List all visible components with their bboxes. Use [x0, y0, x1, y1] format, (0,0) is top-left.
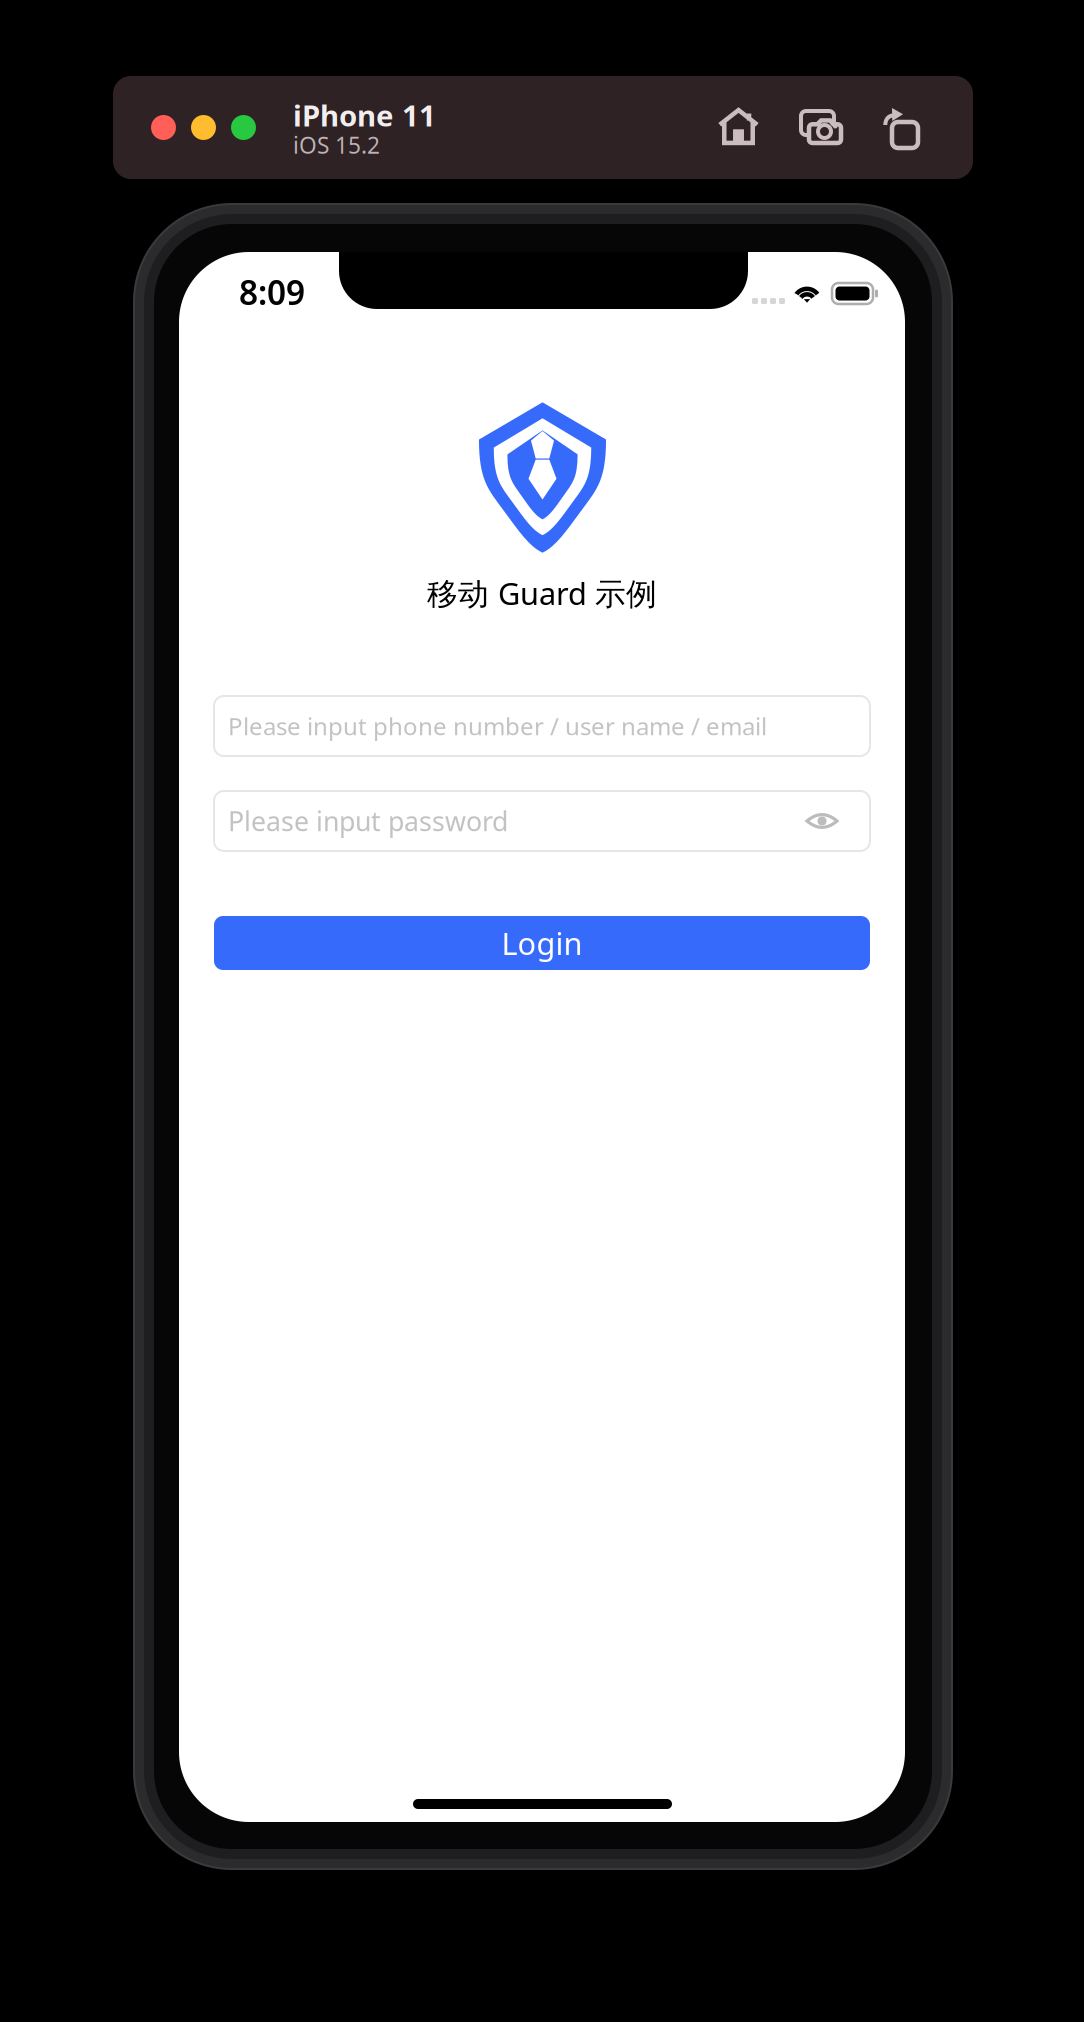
staticText: 移动 Guard 示例 — [427, 573, 657, 613]
button[interactable]: Rotate — [875, 100, 930, 153]
button[interactable]: Show password — [792, 791, 852, 851]
button[interactable]: Home — [711, 100, 766, 153]
staticText: Please input phone number / user name / … — [228, 710, 767, 742]
staticText: 8:09 — [239, 270, 305, 314]
staticText: Please input password — [228, 803, 508, 839]
button[interactable]: Minimize — [191, 115, 216, 140]
button[interactable]: Zoom — [231, 115, 256, 140]
staticText: Login — [501, 923, 582, 963]
button[interactable]: Screenshot — [793, 100, 848, 153]
button[interactable]: Login — [214, 916, 870, 970]
staticText: iPhone 11 — [293, 95, 436, 134]
staticText: iOS 15.2 — [293, 130, 380, 160]
button[interactable]: Close — [151, 115, 176, 140]
